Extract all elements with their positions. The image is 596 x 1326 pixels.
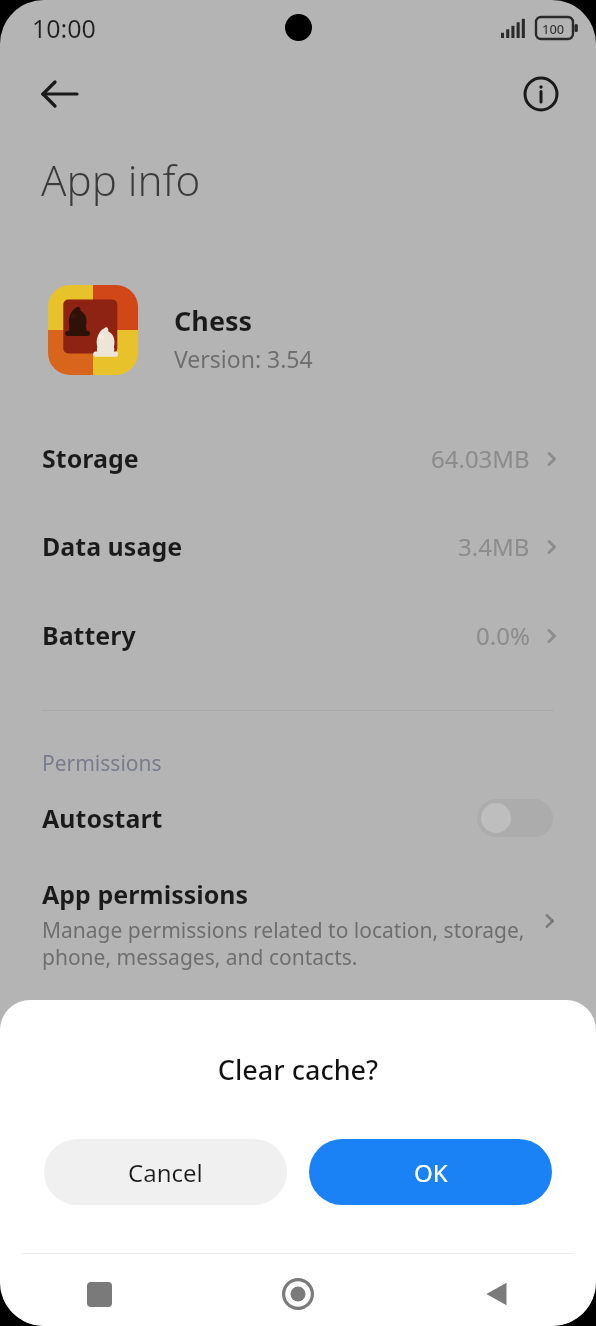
button[interactable]: Autostart xyxy=(0,787,596,849)
staticText: Permissions xyxy=(42,749,162,778)
button[interactable]: Recent apps xyxy=(0,1265,198,1323)
staticText: 10:00 xyxy=(32,11,96,45)
button[interactable]: Cancel xyxy=(44,1139,287,1205)
button[interactable]: App info help xyxy=(515,68,567,120)
staticText: Chess xyxy=(174,302,253,339)
staticText: Data usage xyxy=(42,529,183,563)
staticText: 0.0% xyxy=(476,619,530,652)
staticText: OK xyxy=(414,1156,448,1189)
button[interactable]: Data usage xyxy=(0,515,596,577)
staticText: 100 xyxy=(542,20,565,38)
staticText: 3.4MB xyxy=(458,530,530,563)
staticText: Cancel xyxy=(128,1156,203,1189)
staticText: App info xyxy=(41,151,201,208)
staticText: Manage permissions related to location, … xyxy=(42,916,525,971)
button[interactable]: Back xyxy=(397,1265,596,1323)
button[interactable]: Back xyxy=(34,68,86,120)
button[interactable]: OK xyxy=(309,1139,552,1205)
button[interactable]: App permissions xyxy=(0,868,596,973)
button[interactable]: Storage xyxy=(0,427,596,489)
staticText: Clear cache? xyxy=(0,1051,596,1088)
staticText: Autostart xyxy=(42,801,163,835)
staticText: Version: 3.54 xyxy=(174,343,313,374)
staticText: 64.03MB xyxy=(431,442,530,475)
button[interactable]: Battery xyxy=(0,604,596,666)
staticText: App permissions xyxy=(42,877,249,911)
staticText: Storage xyxy=(42,441,139,475)
staticText: Battery xyxy=(42,618,136,652)
button[interactable]: Home xyxy=(198,1265,397,1323)
